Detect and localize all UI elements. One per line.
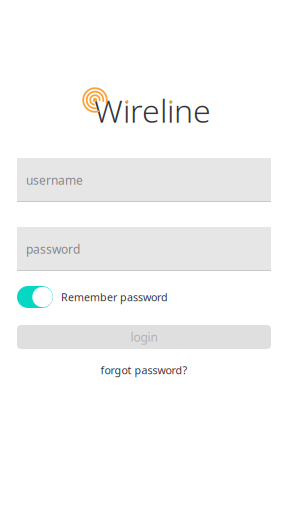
staticText: Wireline — [94, 89, 211, 131]
staticText: Remember password — [61, 290, 168, 304]
button[interactable]: Remember password — [17, 286, 271, 308]
staticText: username — [26, 172, 83, 188]
button[interactable]: forgot password? — [17, 364, 271, 376]
staticText: forgot password? — [100, 363, 187, 377]
staticText: login — [130, 329, 157, 345]
button[interactable]: username — [17, 158, 271, 202]
button[interactable]: login — [17, 325, 271, 349]
staticText: password — [26, 241, 80, 257]
button[interactable]: password — [17, 227, 271, 271]
